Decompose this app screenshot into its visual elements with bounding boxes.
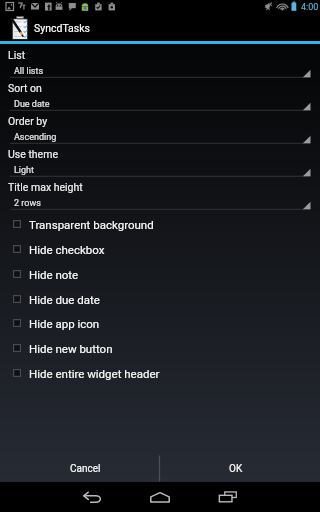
staticText: Transparent background	[29, 218, 154, 231]
button[interactable]: List	[0, 44, 320, 77]
staticText: Hide note	[29, 268, 79, 281]
button[interactable]: Sort on	[0, 77, 320, 110]
button[interactable]: Hide entire widget header	[0, 361, 320, 385]
button[interactable]: Recent apps	[198, 482, 258, 512]
button[interactable]: Transparent background	[0, 212, 320, 236]
staticText: Hide new button	[29, 342, 113, 355]
button[interactable]: Order by	[0, 110, 320, 143]
button[interactable]: Hide note	[0, 262, 320, 286]
staticText: SyncdTasks	[34, 22, 90, 34]
button[interactable]: Hide checkbox	[0, 237, 320, 261]
staticText: Hide app icon	[29, 317, 100, 330]
staticText: Hide due date	[29, 293, 100, 306]
staticText: OK	[229, 463, 243, 475]
button[interactable]: Title max height	[0, 176, 320, 209]
button[interactable]: Use theme	[0, 143, 320, 176]
button[interactable]: OK	[160, 455, 312, 482]
staticText: Hide entire widget header	[29, 367, 160, 380]
button[interactable]: Cancel	[10, 455, 160, 482]
staticText: Light	[14, 165, 34, 176]
staticText: Cancel	[70, 463, 101, 475]
staticText: Due date	[14, 99, 50, 110]
staticText: Hide checkbox	[29, 243, 105, 256]
staticText: Title max height	[8, 181, 83, 193]
button[interactable]: Back	[62, 482, 122, 512]
button[interactable]: Home	[130, 482, 190, 512]
button[interactable]: Hide due date	[0, 287, 320, 311]
staticText: Order by	[8, 115, 48, 127]
staticText: List	[8, 49, 26, 61]
staticText: 4:00	[301, 2, 319, 13]
button[interactable]: Hide app icon	[0, 311, 320, 335]
staticText: Ascending	[14, 132, 57, 143]
staticText: 2 rows	[14, 198, 41, 209]
staticText: All lists	[14, 66, 44, 77]
button[interactable]: Hide new button	[0, 336, 320, 360]
staticText: Sort on	[8, 82, 42, 94]
staticText: Use theme	[8, 148, 58, 160]
